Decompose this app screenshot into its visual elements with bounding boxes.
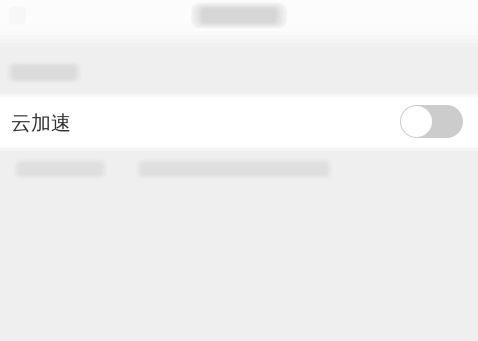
button[interactable]: 云加速: [0, 97, 478, 146]
staticText: 云加速: [11, 110, 71, 136]
